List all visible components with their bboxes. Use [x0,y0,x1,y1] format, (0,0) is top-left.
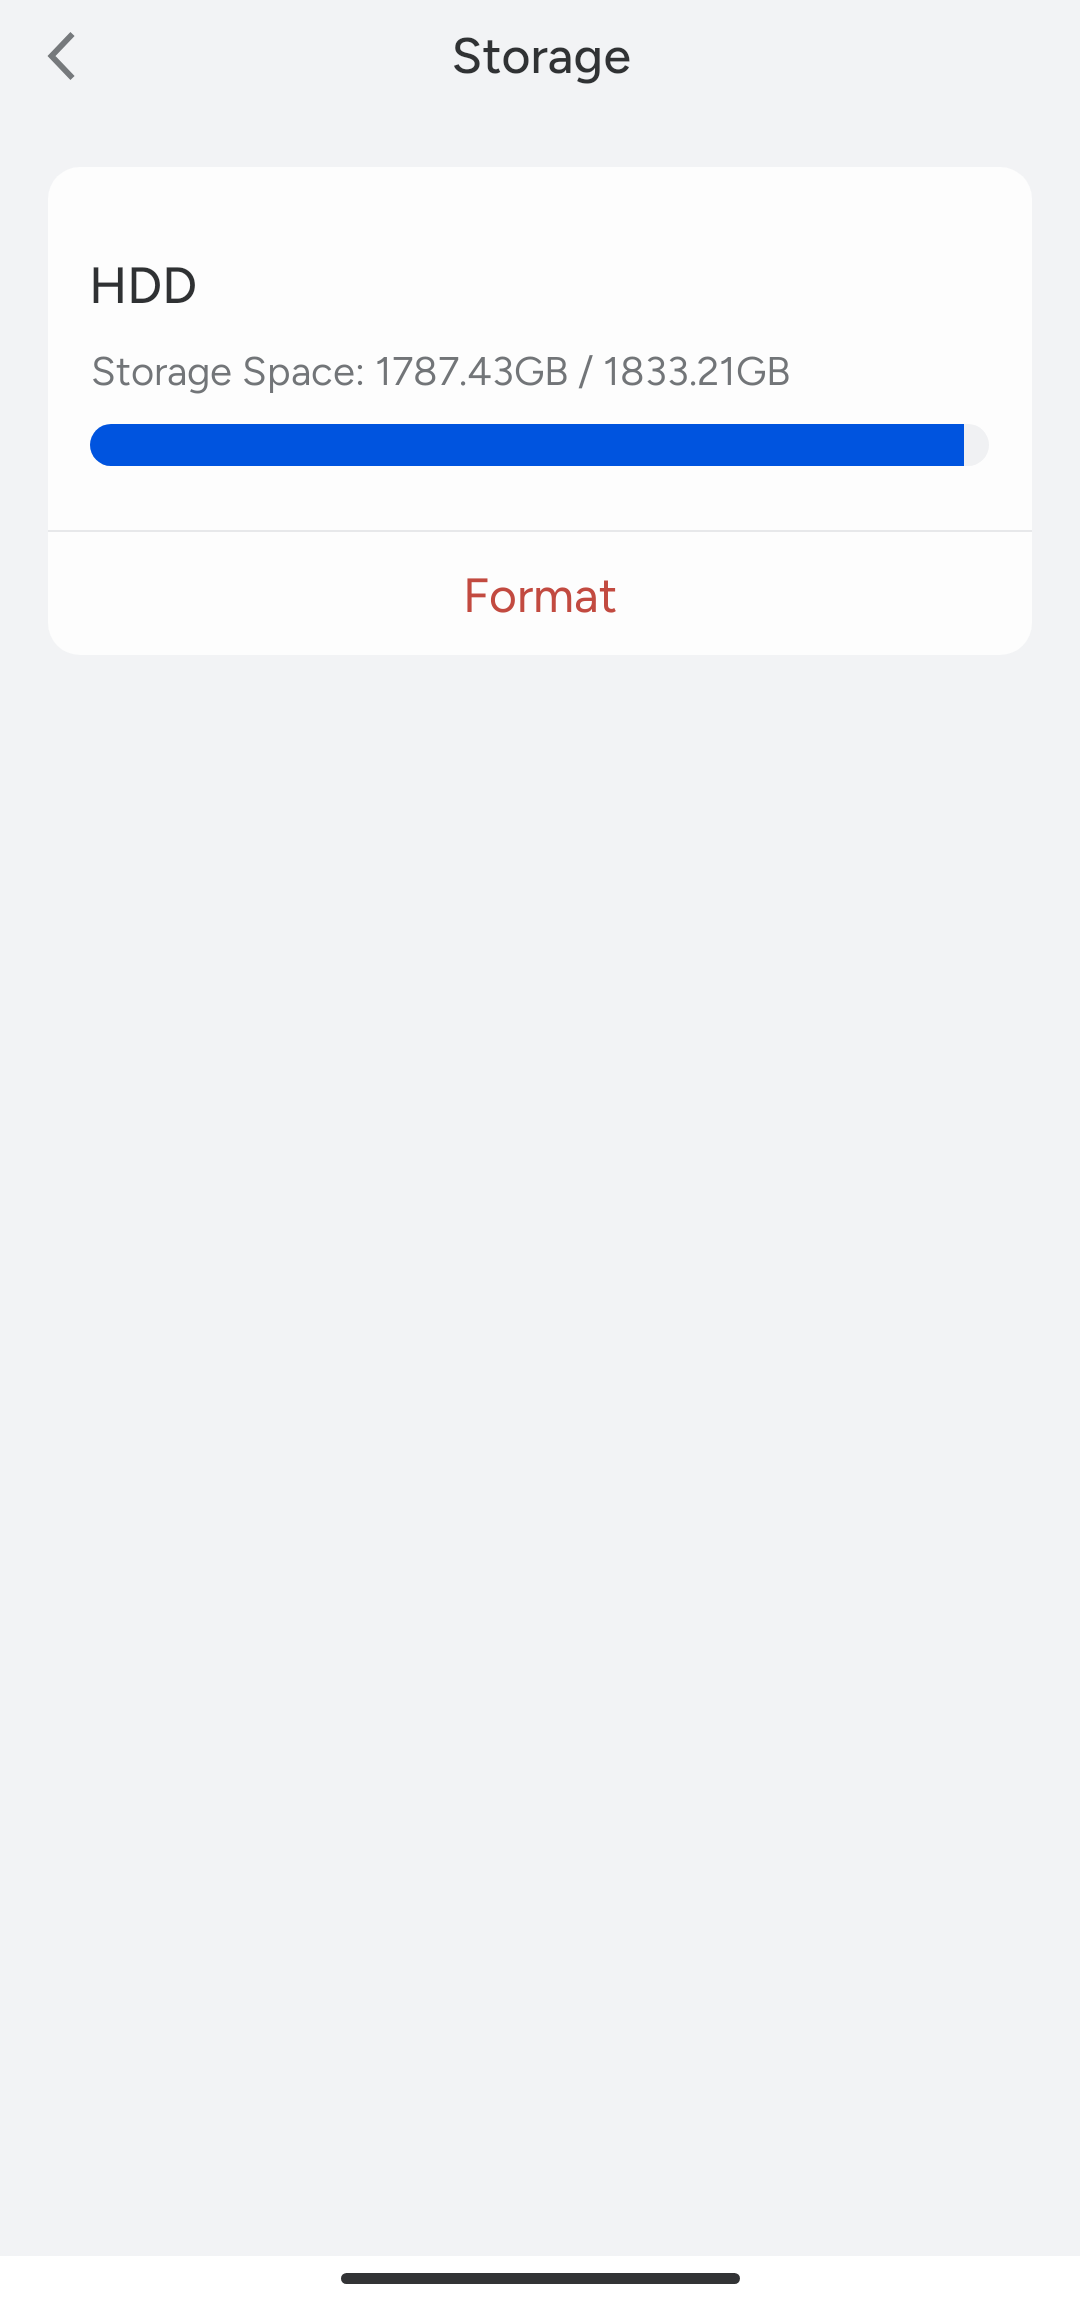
button[interactable]: Back [14,15,94,95]
button[interactable]: Format [48,532,1032,655]
